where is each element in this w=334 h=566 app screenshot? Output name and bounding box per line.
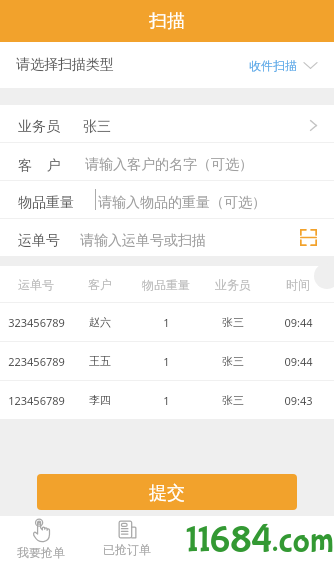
staticText: 业务员 [215, 277, 251, 292]
staticText: 1 [163, 315, 170, 330]
staticText: 09:43 [284, 393, 313, 408]
button[interactable]: 运单号 [0, 266, 334, 302]
staticText: 运单号 [18, 277, 54, 292]
staticText: 已抢订单 [103, 542, 151, 557]
staticText: 123456789 [8, 393, 65, 408]
staticText: 物品重量 [142, 277, 190, 292]
button[interactable]: 客 户 [0, 143, 334, 180]
button[interactable]: 我要抢单 [0, 516, 82, 566]
staticText: 11684.com [186, 520, 334, 562]
staticText: 1 [163, 393, 170, 408]
button[interactable]: 123456789 [0, 381, 334, 419]
staticText: 张三 [222, 393, 244, 407]
staticText: 请输入运单号或扫描 [80, 232, 206, 250]
button[interactable]: 物品重量 [0, 181, 334, 218]
staticText: 09:44 [284, 354, 313, 369]
staticText: 李四 [89, 393, 111, 407]
staticText: 我要抢单 [17, 545, 65, 560]
staticText: 1 [163, 354, 170, 369]
staticText: 客 户 [18, 155, 61, 174]
staticText: 扫描 [149, 10, 185, 33]
staticText: 时间 [286, 277, 310, 292]
button[interactable]: 业务员 [0, 105, 334, 142]
button[interactable]: 323456789 [0, 303, 334, 341]
staticText: 运单号 [18, 232, 60, 250]
staticText: 223456789 [8, 354, 65, 369]
staticText: 王五 [89, 354, 111, 368]
staticText: 客户 [88, 277, 112, 292]
staticText: 赵六 [89, 315, 111, 329]
staticText: 业务员 [18, 118, 60, 136]
staticText: 张三 [83, 118, 111, 136]
staticText: 323456789 [8, 315, 65, 330]
button[interactable]: 223456789 [0, 342, 334, 380]
staticText: 提交 [149, 482, 185, 505]
button[interactable]: 运单号 [0, 219, 334, 256]
staticText: 09:44 [284, 315, 313, 330]
staticText: 张三 [222, 315, 244, 329]
staticText: 请选择扫描类型 [16, 56, 114, 74]
other: 选择业务员 [310, 120, 317, 131]
button[interactable]: 请选择扫描类型 [0, 42, 334, 88]
button[interactable]: 已抢订单 [82, 516, 172, 566]
staticText: 收件扫描 [249, 58, 297, 73]
staticText: 张三 [222, 354, 244, 368]
button[interactable]: 扫描运单号 [300, 229, 317, 246]
staticText: 物品重量 [18, 194, 74, 212]
button[interactable]: 提交 [37, 474, 297, 510]
staticText: 请输入物品的重量（可选） [98, 194, 266, 212]
staticText: 请输入客户的名字（可选） [85, 156, 253, 174]
